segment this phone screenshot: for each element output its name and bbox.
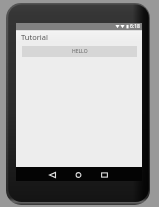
staticText: 6:18 — [130, 23, 140, 30]
staticText: HELLO — [72, 48, 88, 55]
button[interactable]: Recents — [101, 168, 108, 181]
staticText: Tutorial — [21, 32, 48, 42]
button[interactable]: Home — [75, 168, 82, 181]
button[interactable]: HELLO — [22, 46, 137, 57]
button[interactable]: Back — [49, 168, 56, 181]
